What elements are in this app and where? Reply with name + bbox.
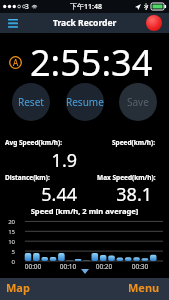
staticText: Map [6,280,30,295]
staticText: 38.1 [0,182,152,207]
staticText: 00:00 [21,262,45,271]
button[interactable]: Resume [66,83,104,121]
staticText: 00:20 [92,262,116,271]
staticText: 15 [0,228,15,236]
staticText [0,148,152,173]
staticText: Avg Speed(km/h): [5,138,63,147]
staticText: Speed(km/h): [112,138,156,147]
button[interactable]: Open navigation menu [6,16,20,30]
staticText: Speed [km/h, 2 min average] [0,206,169,216]
staticText: Resume [66,95,104,109]
button[interactable]: Reset [12,83,50,121]
staticText: Track Recorder [53,17,117,29]
button[interactable]: Save [119,83,157,121]
staticText: Menu [128,280,160,295]
staticText: 5 [0,248,15,256]
staticText: 00:30 [128,262,152,271]
staticText: 0 [0,258,15,266]
staticText: 20 [0,218,15,226]
staticText: 10 [0,238,15,246]
staticText: Reset [18,95,44,109]
button[interactable]: Map [6,280,30,295]
staticText: 2:55:34 [30,38,153,87]
staticText: Distance(km): [5,173,50,182]
button[interactable]: Start recording [146,15,162,31]
staticText: 3 [25,2,29,11]
staticText: 1.9 [0,148,77,173]
staticText: Max Speed(km/h): [97,173,156,182]
staticText: Save [127,95,149,109]
staticText: 下午11:48 [70,2,102,12]
staticText: A [13,57,19,68]
staticText: 00:10 [56,262,80,271]
button[interactable]: Menu [128,280,160,295]
staticText: 5.44 [0,182,77,207]
